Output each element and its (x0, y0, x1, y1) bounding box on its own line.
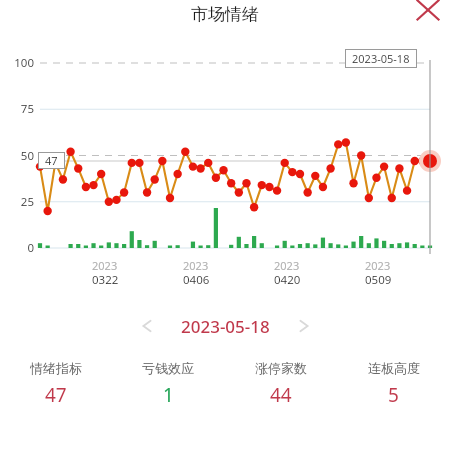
staticText: 0509 (365, 272, 392, 288)
staticText: 75 (0, 101, 34, 117)
staticText: 0406 (183, 272, 210, 288)
button[interactable]: 2023-05-18 (177, 315, 274, 338)
staticText: 47 (45, 382, 67, 408)
staticText: 47 (45, 153, 58, 168)
staticText: 2023-05-18 (181, 315, 270, 338)
staticText: 市场情绪 (191, 4, 259, 25)
button[interactable]: 情绪指标 (0, 358, 112, 410)
button[interactable]: Next day (288, 310, 320, 342)
button[interactable]: 亏钱效应 (112, 358, 224, 410)
staticText: 2023 (92, 258, 118, 273)
staticText: 1 (163, 382, 174, 408)
button[interactable]: Close (410, 0, 446, 27)
button[interactable]: 涨停家数 (224, 358, 337, 410)
staticText: 连板高度 (368, 360, 420, 376)
staticText: 2023 (365, 258, 391, 273)
staticText: 亏钱效应 (142, 360, 194, 376)
staticText: 0 (0, 240, 34, 256)
staticText: 涨停家数 (255, 360, 307, 376)
staticText: 0420 (274, 272, 301, 288)
staticText: 100 (0, 55, 34, 71)
staticText: 0322 (92, 272, 119, 288)
button[interactable]: Previous day (131, 310, 163, 342)
staticText: 2023 (274, 258, 300, 273)
button[interactable]: 连板高度 (337, 358, 450, 410)
staticText: 5 (388, 382, 399, 408)
staticText: 50 (0, 148, 34, 164)
staticText: 情绪指标 (30, 360, 82, 376)
staticText: 2023 (183, 258, 209, 273)
staticText: 44 (270, 382, 292, 408)
staticText: 25 (0, 194, 34, 210)
staticText: 2023-05-18 (352, 51, 410, 66)
